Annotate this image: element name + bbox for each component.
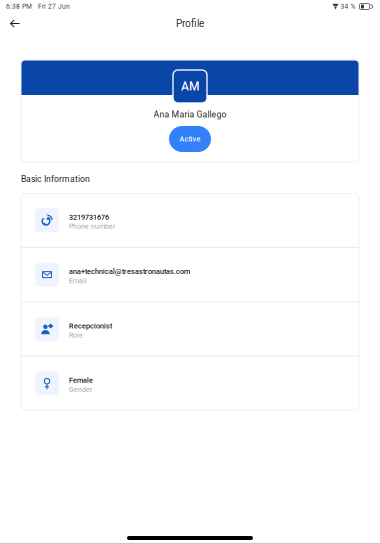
staticText: 6:38 PM xyxy=(6,3,32,10)
staticText: Female xyxy=(69,376,93,385)
button[interactable]: 3219731676 xyxy=(21,193,359,247)
staticText: Recepcionist xyxy=(69,322,112,330)
staticText: 34 % xyxy=(340,3,355,10)
staticText: Email xyxy=(69,277,87,285)
button[interactable]: Back xyxy=(0,11,30,35)
staticText: ana+technical@tresastronautas.com xyxy=(69,267,190,276)
button[interactable]: Active xyxy=(169,126,211,152)
staticText: Role xyxy=(69,331,83,339)
staticText: Phone number xyxy=(69,222,115,230)
staticText: Active xyxy=(179,135,200,143)
button[interactable]: Recepcionist xyxy=(21,302,359,356)
staticText: AM xyxy=(181,79,199,94)
staticText: Basic Information xyxy=(21,174,90,184)
button[interactable]: ana+technical@tresastronautas.com xyxy=(21,248,359,301)
staticText: 3219731676 xyxy=(69,213,109,221)
staticText: Profile xyxy=(176,18,204,29)
button[interactable]: Female xyxy=(21,357,359,410)
staticText: Ana Maria Gallego xyxy=(153,109,226,120)
staticText: Fri 27 Jun xyxy=(38,3,70,10)
staticText: Gender xyxy=(69,386,92,394)
